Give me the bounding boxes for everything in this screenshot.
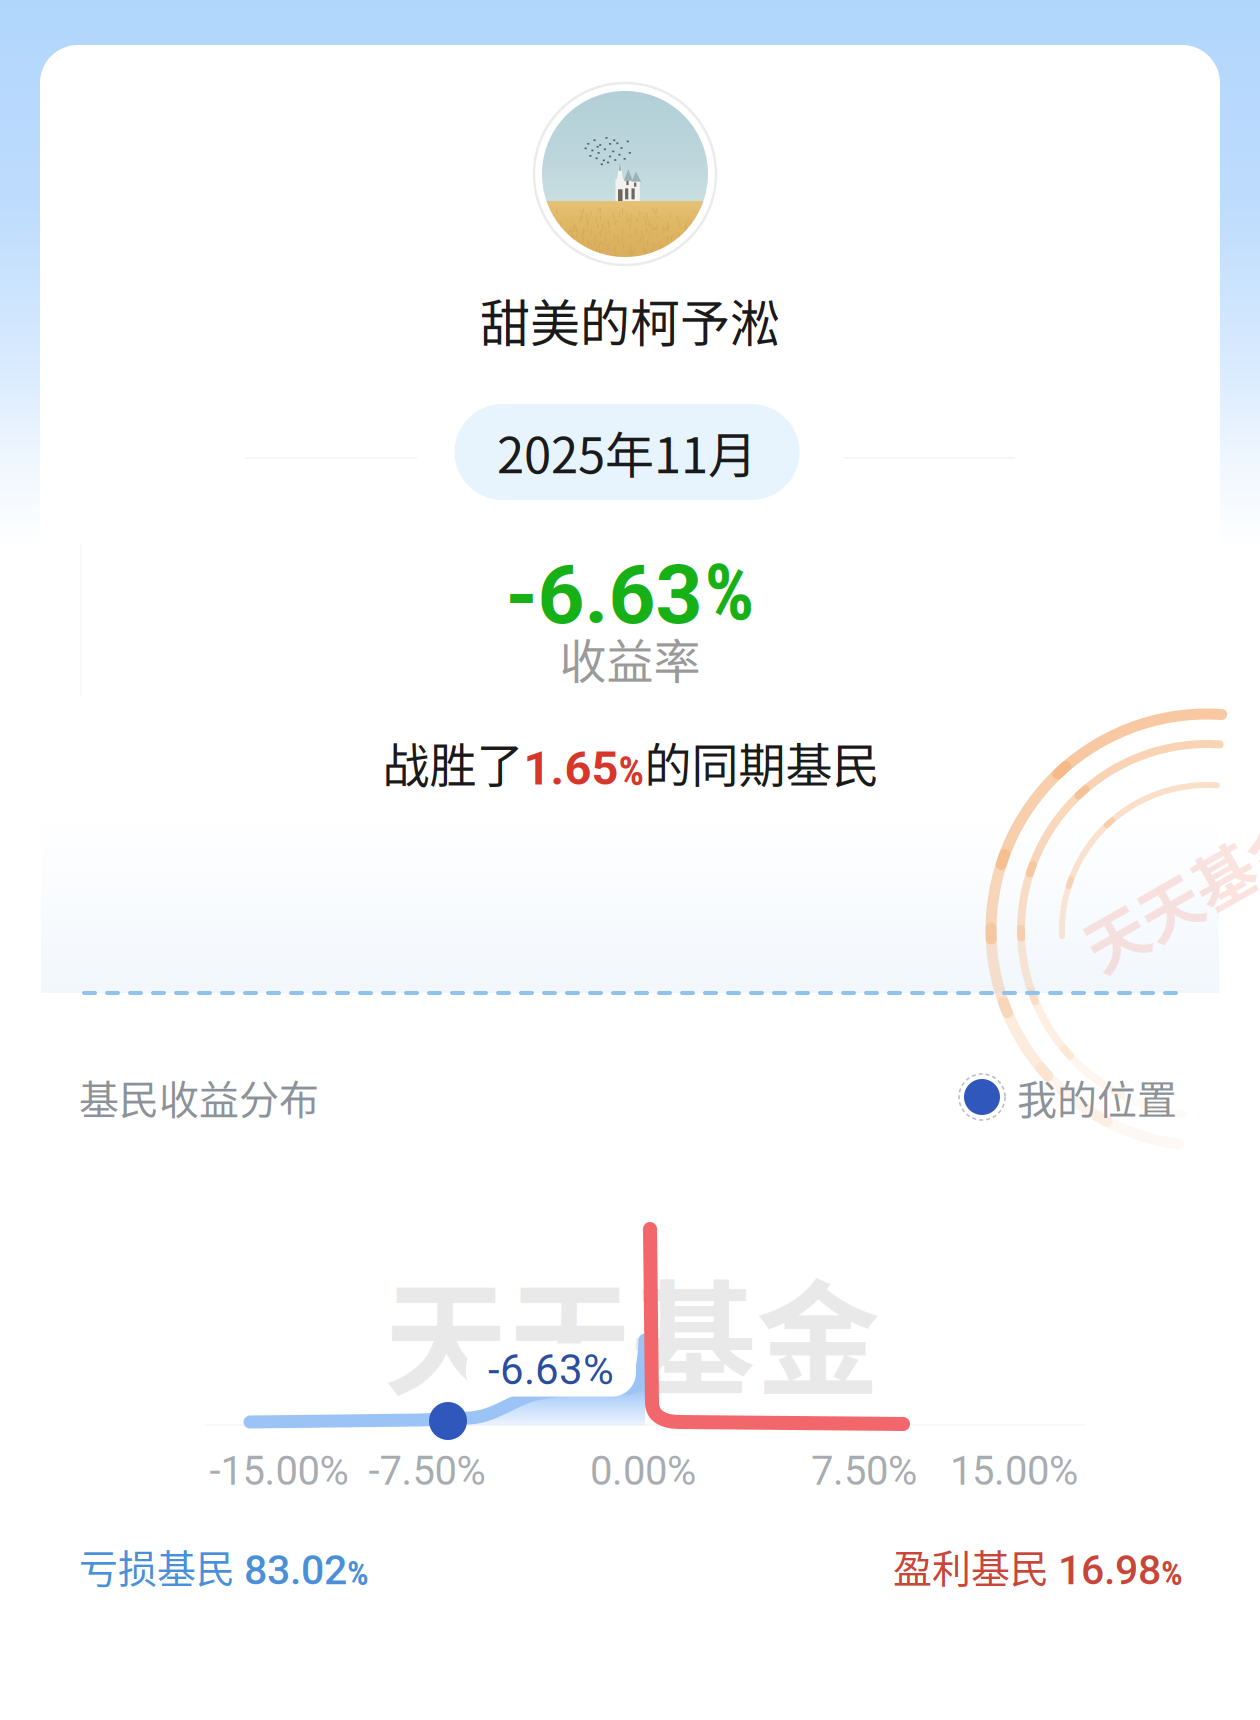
staticText: 7.50% (811, 1448, 917, 1494)
staticText: 2025年11月 (497, 416, 757, 487)
staticText: 盈利基民 (893, 1538, 1058, 1594)
staticText: % (1161, 1553, 1183, 1593)
staticText: 15.00% (950, 1448, 1078, 1494)
staticText: % (618, 748, 644, 795)
staticText: 天天基金 (1072, 845, 1260, 935)
staticText: 收益率 (559, 624, 700, 692)
staticText: 基民收益分布 (79, 1068, 319, 1126)
staticText: -6.63% (488, 1345, 614, 1395)
staticText: 战胜了 (382, 728, 523, 796)
staticText: % (347, 1553, 369, 1593)
staticText: 0.00% (590, 1448, 696, 1494)
staticText: 我的位置 (1017, 1068, 1177, 1126)
staticText: 1.65 (523, 741, 618, 796)
staticText: 83.02 (244, 1546, 347, 1594)
staticText: -6.63 (505, 547, 702, 643)
staticText: 亏损基民 (79, 1538, 244, 1594)
staticText: 的同期基民 (644, 728, 879, 796)
staticText: 16.98 (1058, 1546, 1161, 1594)
staticText: -15.00% (209, 1448, 348, 1494)
staticText: % (704, 547, 754, 638)
staticText: 天天基金 (384, 1241, 880, 1421)
staticText: 甜美的柯予淞 (480, 284, 780, 356)
staticText: -7.50% (368, 1448, 485, 1494)
